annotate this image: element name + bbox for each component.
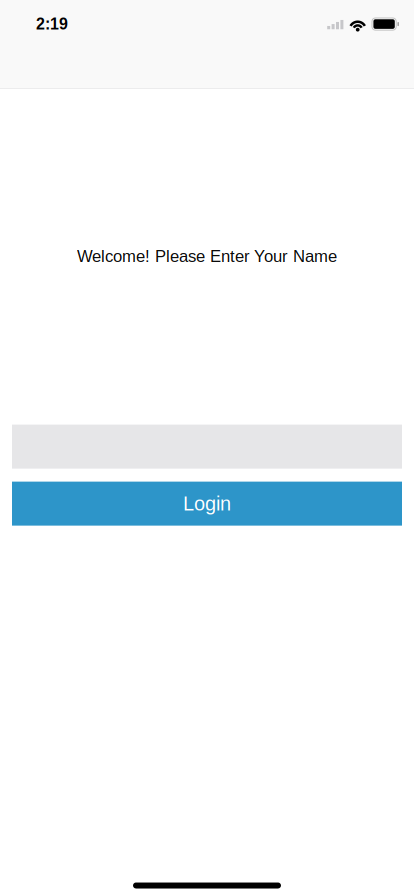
staticText: Welcome! Please Enter Your Name (77, 247, 337, 266)
staticText: Login (183, 492, 231, 515)
button[interactable]: Login (12, 482, 402, 526)
staticText: 2:19 (36, 15, 68, 33)
